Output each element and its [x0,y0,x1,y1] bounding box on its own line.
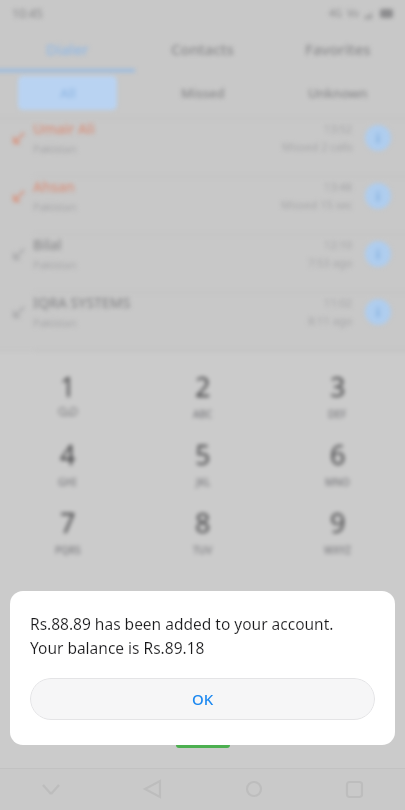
staticText: 8 [195,504,211,541]
staticText: 4 [60,436,76,473]
staticText: 2 [195,368,211,405]
staticText: OK [192,689,214,709]
staticText: Umair Ali [33,119,95,138]
staticText: Your balance is Rs.89.18 [30,637,205,658]
button[interactable]: 3 [270,368,405,436]
staticText: Pakistan [33,141,77,156]
button[interactable]: Bilal [0,235,405,293]
staticText: Missed [181,84,225,102]
staticText: Contacts [171,39,234,59]
staticText: i [376,303,380,321]
button[interactable]: 4 [0,436,135,504]
button[interactable]: All [18,76,117,110]
staticText: JKL [196,475,211,489]
staticText: Pakistan [33,199,77,214]
button[interactable]: Dialer [0,26,135,72]
button[interactable]: 5 [135,436,270,504]
staticText: Unknown [308,84,368,102]
button[interactable]: Call details [365,183,391,209]
staticText: All [60,84,76,102]
button[interactable]: Favorites [270,26,405,72]
button[interactable]: Ahsan [0,177,405,235]
staticText: GHI [58,475,77,489]
staticText: i [376,245,380,263]
staticText: DEF [328,407,347,421]
staticText: 9 [330,504,346,541]
staticText: Favorites [305,39,371,59]
staticText: 10:45 [12,5,43,21]
button[interactable]: Call details [365,241,391,267]
staticText: Pakistan [33,257,77,272]
staticText: Vo [347,6,359,20]
staticText: WXYZ [324,543,352,557]
staticText: Ahsan [33,177,75,196]
staticText: 1 [60,368,76,405]
staticText: 7:53 ago [308,255,353,270]
staticText: ABC [193,407,213,421]
button[interactable]: IQRA SYSTEMS [0,293,405,351]
button[interactable]: OK [30,678,375,720]
staticText: 3 [330,368,346,405]
button[interactable]: Call details [365,125,391,151]
staticText: Missed 2 calls [282,139,353,154]
staticText: IQRA SYSTEMS [33,293,131,312]
staticText: Bilal [33,235,62,254]
staticText: MNO [325,475,350,489]
staticText: 7 [60,504,76,541]
button[interactable]: Contacts [135,26,270,72]
staticText: i [376,187,380,205]
button[interactable]: 1 [0,368,135,436]
button[interactable]: Umair Ali [0,119,405,177]
staticText: 6 [330,436,346,473]
button[interactable]: 7 [0,504,135,572]
staticText: Pakistan [33,315,77,330]
button[interactable]: Call details [365,299,391,325]
staticText: i [376,129,380,147]
staticText: Missed 15 sec [281,197,353,212]
staticText: Rs.88.89 has been added to your account. [30,613,334,634]
staticText: 5 [195,436,211,473]
button[interactable]: 9 [270,504,405,572]
button[interactable]: 2 [135,368,270,436]
button[interactable]: 8 [135,504,270,572]
staticText: 13:48 [324,179,353,194]
button[interactable]: Unknown [270,84,405,102]
staticText: 4G [329,6,342,20]
staticText: PQRS [55,543,81,557]
staticText: TUV [193,543,213,557]
button[interactable]: Missed [135,84,270,102]
staticText: 8:11 ago [308,313,353,328]
button[interactable]: 6 [270,436,405,504]
staticText: Dialer [46,39,89,59]
